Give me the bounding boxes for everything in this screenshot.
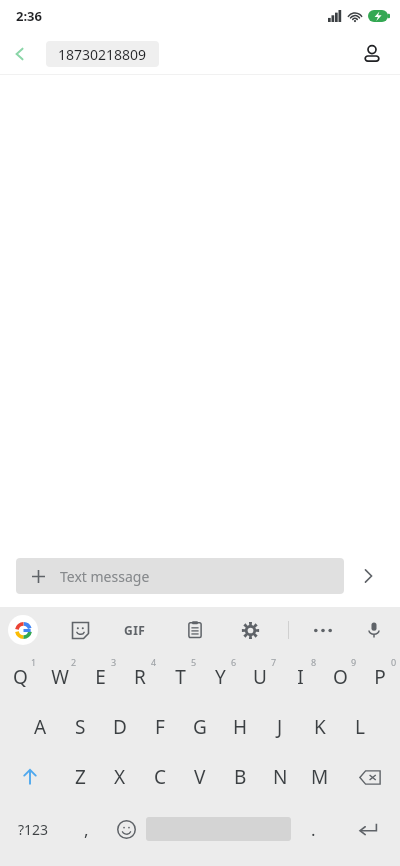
button[interactable]: S [60, 704, 100, 750]
staticText: Z [75, 764, 86, 790]
staticText: M [311, 764, 329, 790]
staticText: Y [215, 664, 226, 690]
staticText: D [113, 714, 127, 740]
staticText: X [114, 764, 126, 790]
button[interactable]: U [240, 654, 280, 700]
button[interactable]: I [280, 654, 320, 700]
button[interactable]: D [100, 704, 140, 750]
staticText: 8 [311, 656, 317, 668]
button[interactable]: N [260, 754, 300, 800]
staticText: B [234, 764, 247, 790]
staticText: A [34, 714, 47, 740]
button[interactable]: Shift [0, 754, 60, 800]
staticText: , [84, 818, 89, 841]
button[interactable]: C [140, 754, 180, 800]
staticText: V [194, 764, 206, 790]
button[interactable]: GIF [117, 612, 153, 648]
staticText: P [374, 664, 386, 690]
button[interactable]: O [320, 654, 360, 700]
staticText: 9 [351, 656, 357, 668]
button[interactable]: L [340, 704, 380, 750]
staticText: U [253, 664, 267, 690]
button[interactable]: E [80, 654, 120, 700]
button[interactable]: G [180, 704, 220, 750]
staticText: . [311, 818, 316, 841]
staticText: F [155, 714, 165, 740]
button[interactable]: Stickers [62, 612, 98, 648]
staticText: 4 [151, 656, 157, 668]
button[interactable]: Settings [232, 612, 268, 648]
button[interactable]: Y [200, 654, 240, 700]
staticText: J [277, 714, 283, 740]
button[interactable]: A [20, 704, 60, 750]
button[interactable]: . [291, 806, 335, 852]
staticText: GIF [124, 622, 146, 638]
staticText: K [314, 714, 326, 740]
staticText: C [154, 764, 167, 790]
button[interactable]: X [100, 754, 140, 800]
staticText: 3 [111, 656, 117, 668]
staticText: L [355, 714, 365, 740]
button[interactable]: V [180, 754, 220, 800]
button[interactable]: Enter [335, 806, 400, 852]
button[interactable]: More options [305, 612, 341, 648]
button[interactable]: Text message [16, 558, 344, 594]
button[interactable]: Emoji [106, 806, 146, 852]
button[interactable]: M [300, 754, 340, 800]
staticText: G [193, 714, 207, 740]
staticText: 1 [31, 656, 37, 668]
button[interactable]: Backspace [340, 754, 400, 800]
button[interactable]: 18730218809 [46, 41, 159, 67]
staticText: 18730218809 [58, 45, 147, 64]
staticText: Text message [60, 567, 150, 586]
staticText: H [233, 714, 248, 740]
button[interactable]: Back [0, 34, 40, 74]
button[interactable]: Z [60, 754, 100, 800]
staticText: R [134, 664, 146, 690]
button[interactable]: Send [344, 552, 392, 600]
staticText: ?123 [18, 820, 49, 839]
staticText: I [297, 664, 304, 690]
button[interactable]: H [220, 704, 260, 750]
staticText: T [175, 664, 186, 690]
button[interactable]: Voice input [356, 612, 392, 648]
staticText: 0 [391, 656, 397, 668]
button[interactable]: , [66, 806, 106, 852]
button[interactable]: T [160, 654, 200, 700]
staticText: O [333, 664, 348, 690]
staticText: E [95, 664, 106, 690]
button[interactable]: J [260, 704, 300, 750]
staticText: 7 [271, 656, 277, 668]
button[interactable]: Google search [8, 615, 38, 645]
button[interactable]: Contact details [352, 34, 392, 74]
staticText: 2:36 [16, 7, 42, 25]
button[interactable]: B [220, 754, 260, 800]
button[interactable]: Clipboard [177, 612, 213, 648]
button[interactable]: Q [0, 654, 40, 700]
button[interactable]: W [40, 654, 80, 700]
staticText: N [273, 764, 288, 790]
button[interactable]: ?123 [0, 806, 66, 852]
button[interactable]: F [140, 704, 180, 750]
staticText: S [75, 714, 86, 740]
button[interactable]: R [120, 654, 160, 700]
button[interactable]: P [360, 654, 400, 700]
staticText: 2 [71, 656, 77, 668]
button[interactable]: K [300, 704, 340, 750]
staticText: 6 [231, 656, 237, 668]
staticText: W [51, 664, 69, 690]
staticText: Q [13, 664, 28, 690]
staticText: 5 [191, 656, 197, 668]
